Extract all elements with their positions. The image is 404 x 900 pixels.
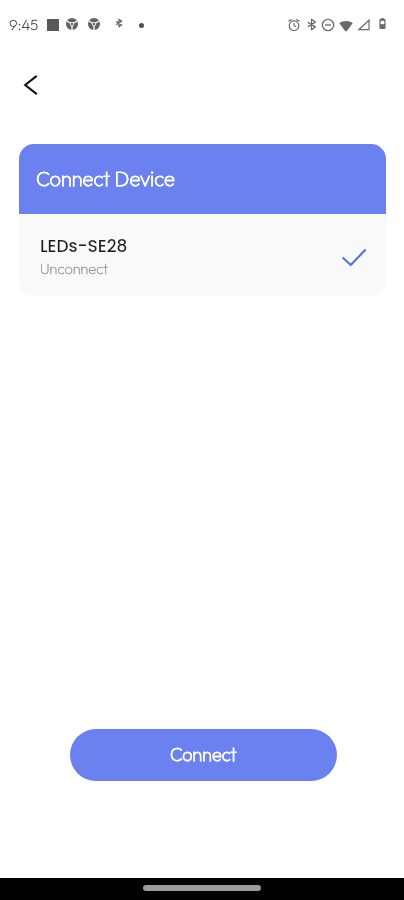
- staticText: Connect: [170, 743, 237, 766]
- staticText: Unconnect: [40, 259, 109, 277]
- button[interactable]: Back: [9, 63, 53, 107]
- staticText: Connect: [170, 743, 237, 766]
- staticText: Unconnect: [40, 259, 109, 277]
- staticText: Connect Device: [36, 166, 175, 191]
- staticText: 9:45: [9, 15, 39, 34]
- staticText: LEDs-SE28: [40, 234, 128, 258]
- staticText: 9:45: [9, 15, 39, 34]
- button[interactable]: Connect: [70, 729, 337, 781]
- button[interactable]: LEDs-SE28: [19, 214, 386, 296]
- staticText: Connect Device: [36, 166, 175, 191]
